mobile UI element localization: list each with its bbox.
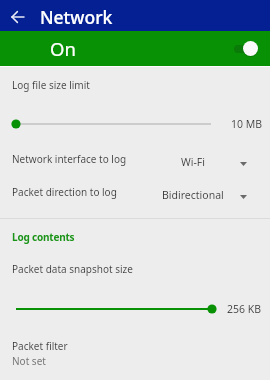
staticText: Wi-Fi (181, 155, 206, 169)
staticText: Network (40, 5, 113, 29)
button[interactable]: Log file size limit slider (0, 114, 270, 134)
staticText: Packet data snapshot size (12, 262, 133, 276)
button[interactable]: Back (0, 0, 33, 31)
button[interactable]: Packet filter (0, 339, 270, 368)
button[interactable]: Packet data snapshot size slider (0, 299, 270, 319)
button[interactable]: Packet direction to log (0, 178, 270, 204)
staticText: 256 KB (227, 302, 262, 316)
button[interactable]: Network interface to log (0, 145, 270, 171)
staticText: Not set (12, 354, 46, 368)
staticText: Packet filter (12, 339, 68, 353)
staticText: Log file size limit (12, 78, 90, 92)
button[interactable]: On (0, 31, 270, 66)
staticText: Packet direction to log (12, 185, 117, 199)
button[interactable]: Log contents (12, 230, 75, 244)
staticText: On (50, 36, 76, 61)
staticText: Bidirectional (162, 188, 224, 202)
staticText: Network interface to log (12, 152, 127, 166)
staticText: 10 MB (231, 117, 263, 131)
